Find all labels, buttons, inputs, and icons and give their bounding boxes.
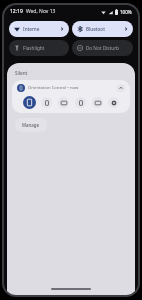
staticText: Bluetooth	[86, 26, 105, 32]
staticText: Do Not Disturb	[86, 45, 119, 51]
button[interactable]: Reverse portrait	[75, 97, 86, 108]
button[interactable]: Reverse landscape	[92, 97, 103, 108]
staticText: Orientation Control • now	[28, 85, 79, 91]
staticText: Silent	[15, 70, 28, 76]
staticText: 12:19	[10, 8, 23, 15]
button[interactable]: Collapse notification	[117, 84, 125, 92]
button[interactable]: Portrait lock	[41, 97, 52, 108]
button[interactable]: Orientation Control • now	[12, 80, 130, 113]
button[interactable]: Landscape lock	[58, 97, 69, 108]
button[interactable]: Flashlight	[9, 40, 69, 56]
staticText: Flashlight	[23, 45, 45, 51]
button[interactable]: Internet	[9, 21, 69, 37]
staticText: 100%	[120, 9, 132, 15]
button[interactable]: Manage	[15, 118, 47, 132]
button[interactable]: Auto rotate	[23, 96, 36, 109]
button[interactable]: Bluetooth	[72, 21, 133, 37]
staticText: Manage	[22, 122, 40, 128]
button[interactable]: Settings	[108, 97, 119, 108]
staticText: Wed, Nov 13	[26, 8, 56, 15]
staticText: Internet	[23, 26, 41, 32]
button[interactable]: Do Not Disturb	[72, 40, 133, 56]
